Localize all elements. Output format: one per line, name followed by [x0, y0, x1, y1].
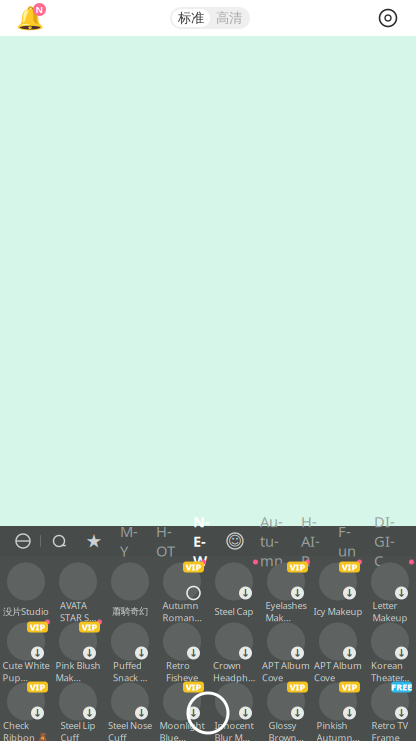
button[interactable]: ↓: [260, 618, 312, 678]
button[interactable]: VIP: [260, 678, 312, 738]
button[interactable]: ↓: [208, 678, 260, 738]
staticText: N: [35, 3, 43, 16]
staticText: Letter Makeup: [372, 599, 407, 624]
staticText: ↓: [345, 707, 354, 719]
staticText: ↓: [33, 707, 42, 719]
button[interactable]: VIP: [52, 618, 104, 678]
staticText: ↓: [137, 647, 146, 659]
staticText: 🔔: [16, 5, 44, 31]
staticText: Retro TV Frame: [371, 719, 408, 741]
staticText: VIP: [341, 561, 357, 573]
staticText: DIGIC: [374, 512, 395, 570]
staticText: ↓: [345, 647, 354, 659]
button[interactable]: ↓: [156, 618, 208, 678]
staticText: ↓: [293, 647, 302, 659]
staticText: Steel Lip Cuff: [60, 719, 95, 741]
staticText: 蕭騎奇幻: [112, 606, 148, 617]
staticText: AVATA STAR S…: [60, 599, 96, 624]
staticText: ↓: [33, 647, 42, 659]
staticText: Steel Cap: [214, 605, 253, 618]
staticText: Autumn Roman…: [162, 599, 201, 624]
staticText: ↓: [293, 587, 302, 599]
button[interactable]: Shutter: [182, 687, 234, 739]
staticText: 没片Studio: [3, 605, 49, 618]
staticText: ↓: [189, 707, 198, 719]
staticText: Eyelashes Mak…: [265, 599, 306, 624]
staticText: ★: [85, 530, 102, 552]
button[interactable]: ↓: [208, 558, 260, 618]
staticText: ↓: [397, 647, 406, 659]
staticText: VIP: [185, 561, 201, 573]
button[interactable]: ↓: [104, 678, 156, 738]
staticText: Autumn: [260, 512, 283, 570]
button[interactable]: 标准: [172, 9, 210, 27]
staticText: VIP: [81, 621, 97, 633]
button[interactable]: VIP: [312, 558, 364, 618]
staticText: ☺: [228, 533, 242, 548]
button[interactable]: MY: [111, 526, 147, 556]
staticText: VIP: [289, 681, 305, 693]
button[interactable]: VIP: [260, 558, 312, 618]
staticText: ↓: [137, 707, 146, 719]
staticText: NEW: [193, 512, 210, 570]
button[interactable]: NEW: [184, 526, 219, 556]
button[interactable]: Autumn: [251, 526, 292, 556]
staticText: HOT: [156, 521, 175, 560]
staticText: VIP: [29, 621, 45, 633]
button[interactable]: ↓: [364, 618, 416, 678]
staticText: Steel Nose Cuff: [108, 719, 152, 741]
staticText: ↓: [293, 707, 302, 719]
button[interactable]: Fun: [329, 526, 365, 556]
button[interactable]: DIGIC: [365, 526, 404, 556]
button[interactable]: HAIR: [292, 526, 329, 556]
staticText: FREE: [391, 681, 412, 693]
staticText: ↓: [85, 707, 94, 719]
button[interactable]: ↓: [312, 618, 364, 678]
staticText: Crown Headph…: [213, 659, 255, 684]
button[interactable]: None: [6, 526, 40, 556]
button[interactable]: HOT: [147, 526, 184, 556]
staticText: Moonlight Blue…: [159, 719, 204, 741]
button[interactable]: AVATA STAR S…: [52, 558, 104, 618]
staticText: ↓: [241, 647, 250, 659]
staticText: APT Album Cove: [262, 659, 310, 684]
staticText: Fun: [338, 521, 356, 560]
button[interactable]: ↓: [208, 618, 260, 678]
staticText: 标准: [178, 10, 204, 26]
button[interactable]: Emoji: [219, 526, 251, 556]
button[interactable]: FREE: [364, 678, 416, 738]
button[interactable]: VIP: [312, 678, 364, 738]
staticText: Check Ribbon 🧸: [3, 719, 49, 741]
staticText: Korean Theater…: [371, 659, 409, 684]
button[interactable]: VIP: [156, 558, 208, 618]
staticText: ↓: [397, 587, 406, 599]
button[interactable]: VIP: [0, 678, 52, 738]
button[interactable]: ↓: [364, 558, 416, 618]
staticText: ↓: [85, 647, 94, 659]
button[interactable]: VIP: [0, 618, 52, 678]
staticText: ↓: [397, 707, 406, 719]
button[interactable]: Search: [41, 526, 77, 556]
staticText: ↓: [241, 587, 250, 599]
button[interactable]: 没片Studio: [0, 558, 52, 618]
button[interactable]: Favorites: [77, 526, 111, 556]
staticText: Pink Blush Mak…: [55, 659, 100, 684]
button[interactable]: ↓: [52, 678, 104, 738]
button[interactable]: Notifications: [10, 0, 50, 36]
button[interactable]: Switch camera: [370, 0, 406, 36]
staticText: Cute White Pup…: [2, 659, 49, 684]
staticText: APT Album Cove: [314, 659, 362, 684]
button[interactable]: 蕭騎奇幻: [104, 558, 156, 618]
button[interactable]: VIP: [156, 678, 208, 738]
staticText: VIP: [341, 681, 357, 693]
button[interactable]: ↓: [104, 618, 156, 678]
staticText: ↓: [189, 647, 198, 659]
staticText: Innocent Blur M…: [214, 719, 253, 741]
staticText: ↓: [345, 587, 354, 599]
staticText: VIP: [29, 681, 45, 693]
staticText: ↓: [241, 707, 250, 719]
staticText: Pinkish Autumn…: [316, 719, 359, 741]
staticText: MY: [120, 521, 138, 560]
button[interactable]: 高清: [210, 9, 248, 27]
staticText: VIP: [289, 561, 305, 573]
